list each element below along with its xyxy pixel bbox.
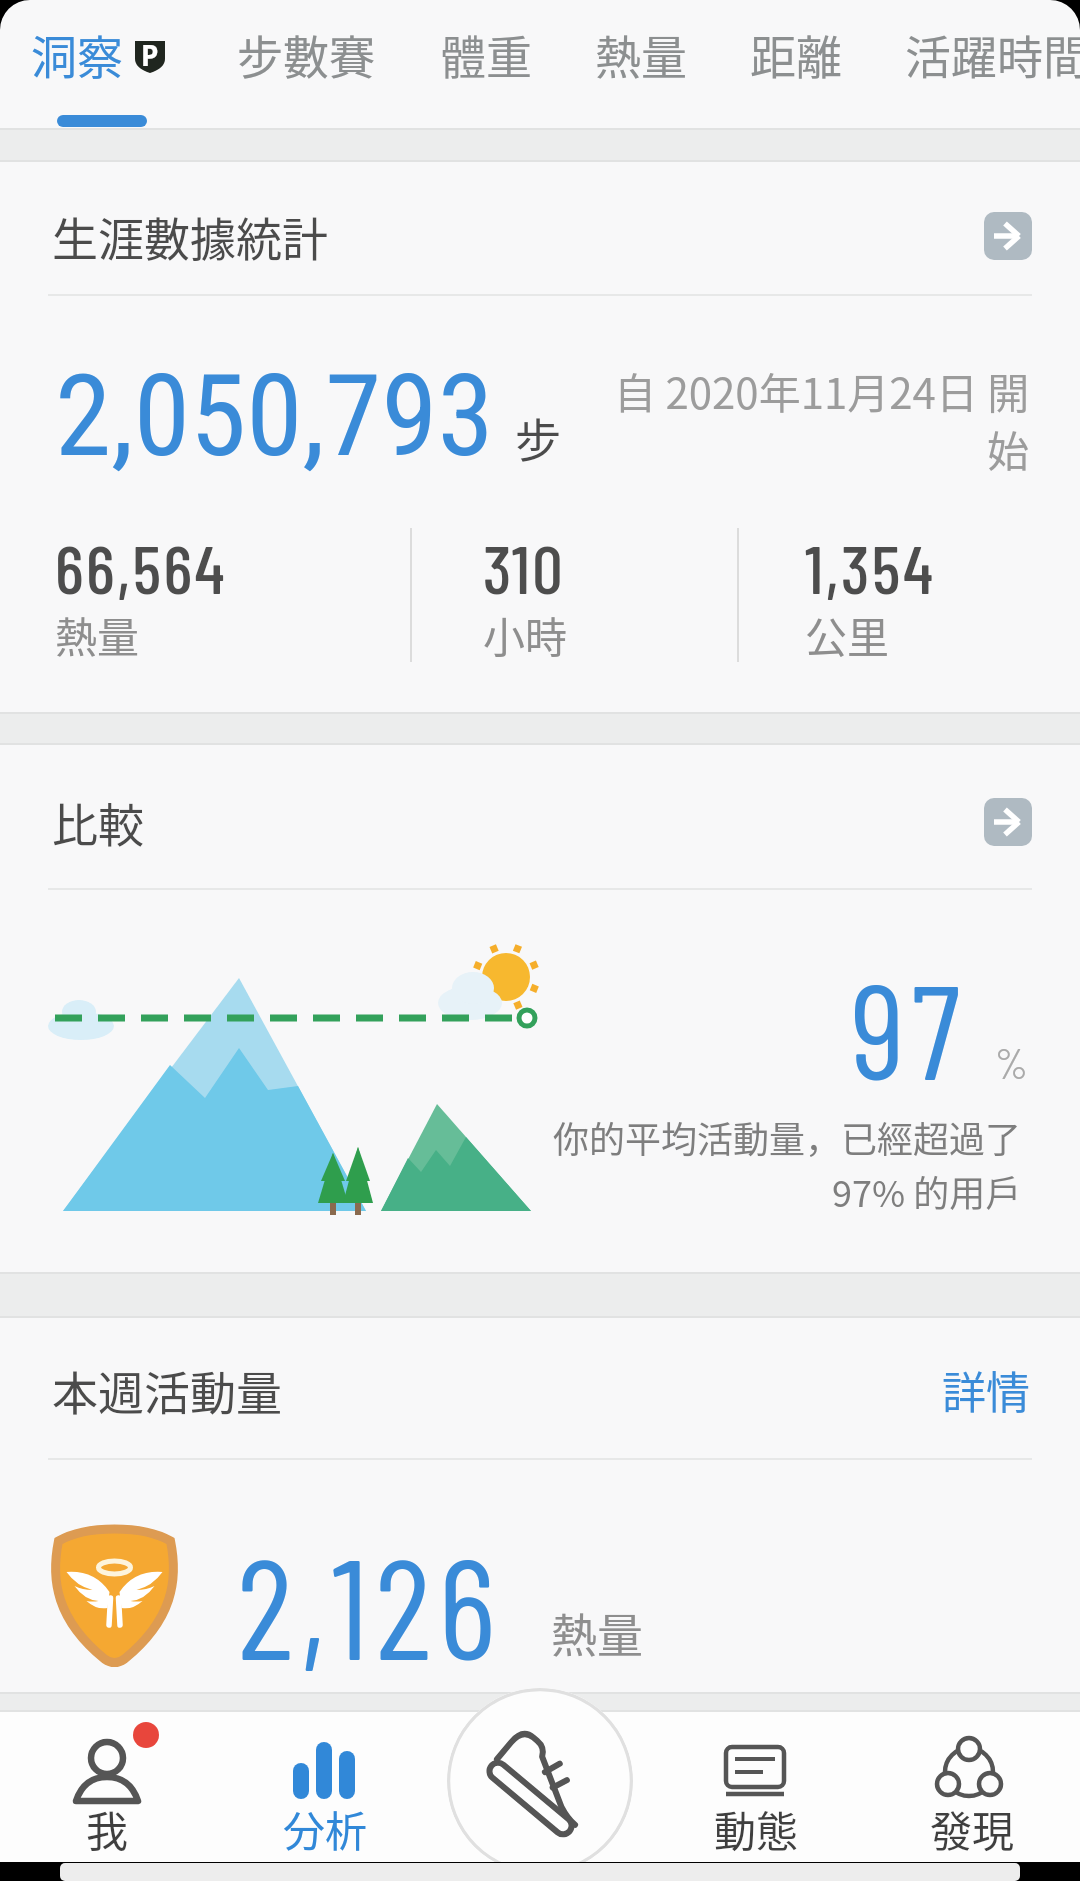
button[interactable]: 洞察 [31,0,123,154]
button[interactable]: 詳情 [230,1290,1030,1490]
staticText: % [995,1037,1028,1087]
staticText: 2,050,793 [55,349,494,483]
staticText: 熱量 [55,604,140,665]
staticText: 本週活動量 [52,1357,282,1424]
staticText: 活躍時間 [905,21,1080,88]
staticText: 我 [86,1798,129,1859]
button[interactable] [910,1715,1030,1855]
button[interactable] [265,1715,385,1855]
button[interactable]: 步數賽 [237,0,375,154]
button[interactable] [447,1688,633,1874]
staticText: 1,354 [805,526,936,608]
staticText: 310 [483,526,566,608]
staticText: 發現 [930,1798,1015,1859]
staticText: 熱量 [551,1599,643,1666]
staticText: 步數賽 [237,21,375,88]
staticText: 97 [851,947,968,1107]
staticText: 體重 [440,21,532,88]
button[interactable] [984,212,1032,260]
staticText: 自 2020年11月24日 開 [614,360,1030,421]
button[interactable]: 熱量 [595,0,687,154]
staticText: 步 [515,404,561,471]
button[interactable] [984,798,1032,846]
staticText: 2,126 [237,1520,503,1688]
staticText: 始 [987,418,1030,479]
staticText: 詳情 [942,1358,1030,1422]
staticText: 66,564 [55,526,228,608]
staticText: 分析 [283,1798,368,1859]
button[interactable] [695,1715,815,1855]
button[interactable]: 活躍時間 [905,0,1080,154]
button[interactable] [40,1715,180,1855]
staticText: 小時 [483,604,568,665]
button[interactable]: 體重 [440,0,532,154]
staticText: 熱量 [595,21,687,88]
staticText: 公里 [805,604,890,665]
staticText: 動態 [714,1798,799,1859]
staticText: P [141,36,159,74]
button[interactable]: 距離 [750,0,842,154]
staticText: 你的平均活動量，已經超過了 [553,1111,1022,1163]
staticText: 生涯數據統計 [52,203,328,270]
staticText: 距離 [750,21,842,88]
staticText: 比較 [52,789,144,856]
staticText: 97% 的用戶 [832,1165,1022,1217]
staticText: 洞察 [31,21,123,88]
